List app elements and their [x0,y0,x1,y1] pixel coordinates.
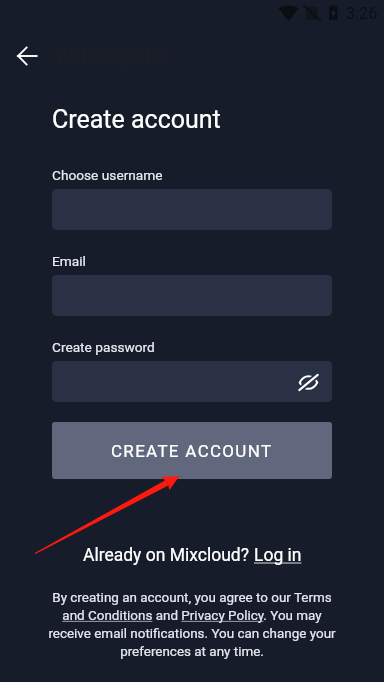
button[interactable]: Log in [254,545,302,566]
staticText: Create account [52,105,221,134]
button[interactable]: Back [7,36,47,76]
staticText: Choose username [52,167,163,183]
staticText: CREATE ACCOUNT [111,441,273,461]
button[interactable]: CREATE ACCOUNT [52,422,332,479]
button[interactable]: Show password [294,368,322,396]
staticText: By creating an account, you agree to our… [24,590,360,660]
button[interactable]: Show password [52,361,332,402]
staticText: Create password [52,339,155,355]
staticText: 3:26 [346,4,378,23]
staticText: Already on Mixcloud? [83,545,254,566]
staticText: Email [52,253,86,269]
